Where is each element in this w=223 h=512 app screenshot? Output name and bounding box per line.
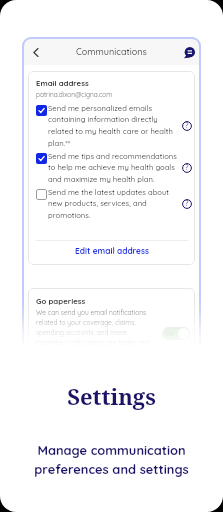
staticText: Send me tips and recommendations to help… [48,151,179,184]
staticText: Go paperless [36,296,86,306]
staticText: We can send you email notifications rela… [36,308,150,355]
button[interactable]: Back [26,43,44,61]
button[interactable]: Messages [182,45,196,59]
button[interactable]: Send me tips and recommendations to help… [36,151,192,184]
button[interactable]: Send me personalized emails containing i… [36,103,192,148]
staticText: Settings [0,381,223,411]
staticText: Communications [76,46,147,57]
button[interactable]: Help [181,162,192,173]
button[interactable]: Go paperless toggle [162,327,190,340]
staticText: Send me personalized emails containing i… [48,103,179,148]
staticText: Email address [36,78,89,88]
staticText: patrina.dixon@cigna.com [36,90,113,98]
button[interactable]: Help [181,120,192,131]
staticText: Send me the latest updates about new pro… [48,187,179,220]
staticText: Manage communication preferences and set… [0,442,223,477]
staticText: ? [185,199,189,208]
staticText: On [166,330,175,338]
button[interactable]: Help [181,198,192,209]
button[interactable]: Send me the latest updates about new pro… [36,187,192,220]
staticText: ? [185,121,189,130]
staticText: ? [185,163,189,172]
button[interactable]: Edit email address [36,246,188,256]
